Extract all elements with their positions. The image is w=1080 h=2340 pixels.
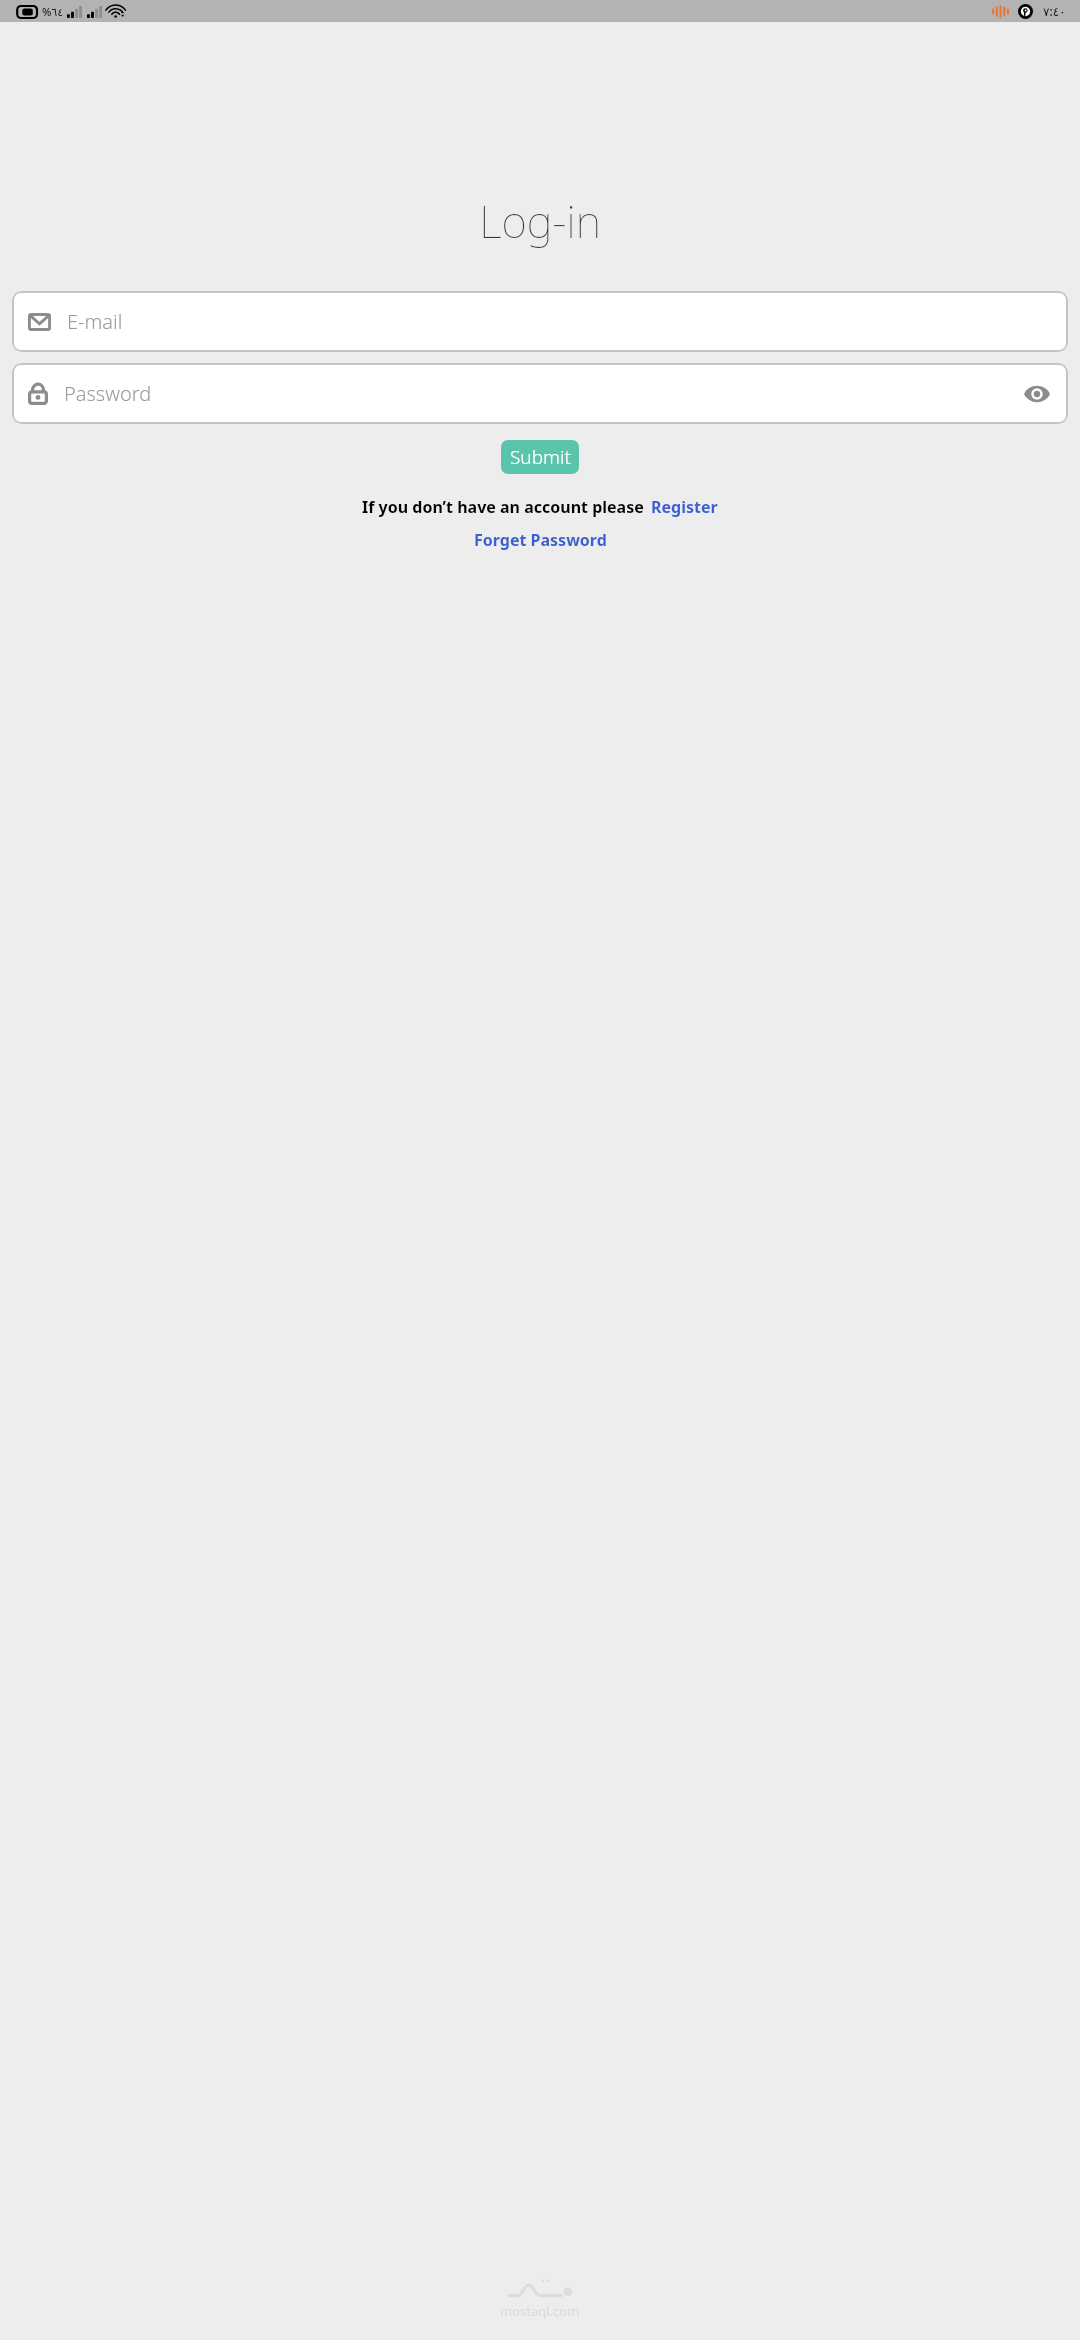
button[interactable]: Password bbox=[12, 363, 1068, 424]
staticText: %٦٤ bbox=[42, 4, 64, 19]
staticText: If you don’t have an account please bbox=[362, 496, 644, 518]
button[interactable]: Submit bbox=[501, 440, 579, 474]
staticText: Forget Password bbox=[474, 529, 607, 551]
button[interactable]: E-mail bbox=[12, 291, 1068, 352]
staticText: Password bbox=[64, 380, 152, 407]
staticText: Submit bbox=[510, 444, 571, 470]
staticText: ٧:٤٠ bbox=[1043, 3, 1066, 19]
staticText: Log-in bbox=[479, 191, 601, 251]
button[interactable]: Register bbox=[651, 496, 718, 518]
button[interactable]: Show password bbox=[1022, 379, 1052, 409]
staticText: mostaql.com bbox=[500, 2302, 580, 2320]
button[interactable]: Forget Password bbox=[474, 529, 607, 551]
staticText: E-mail bbox=[67, 308, 123, 335]
staticText: Register bbox=[651, 496, 718, 518]
